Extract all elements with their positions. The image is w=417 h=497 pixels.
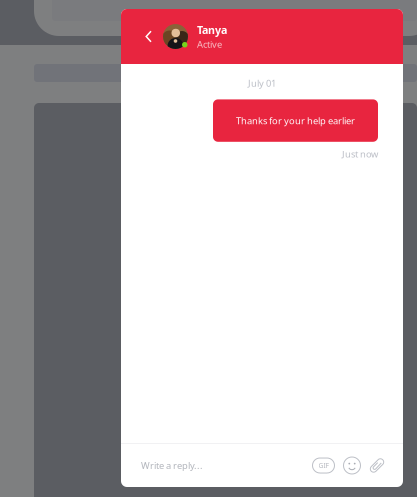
button[interactable]: Attach file	[368, 456, 386, 474]
staticText: Write a reply...	[141, 459, 203, 472]
staticText: Tanya	[197, 23, 227, 37]
staticText: Active	[197, 38, 222, 50]
button[interactable]: Emoji	[343, 456, 361, 474]
button[interactable]: Back	[140, 9, 158, 64]
button[interactable]: Send a GIF	[312, 457, 335, 473]
staticText: Just now	[342, 148, 378, 160]
staticText: GIF	[318, 461, 328, 470]
staticText: Thanks for your help earlier	[236, 114, 355, 127]
staticText: July 01	[248, 77, 276, 89]
